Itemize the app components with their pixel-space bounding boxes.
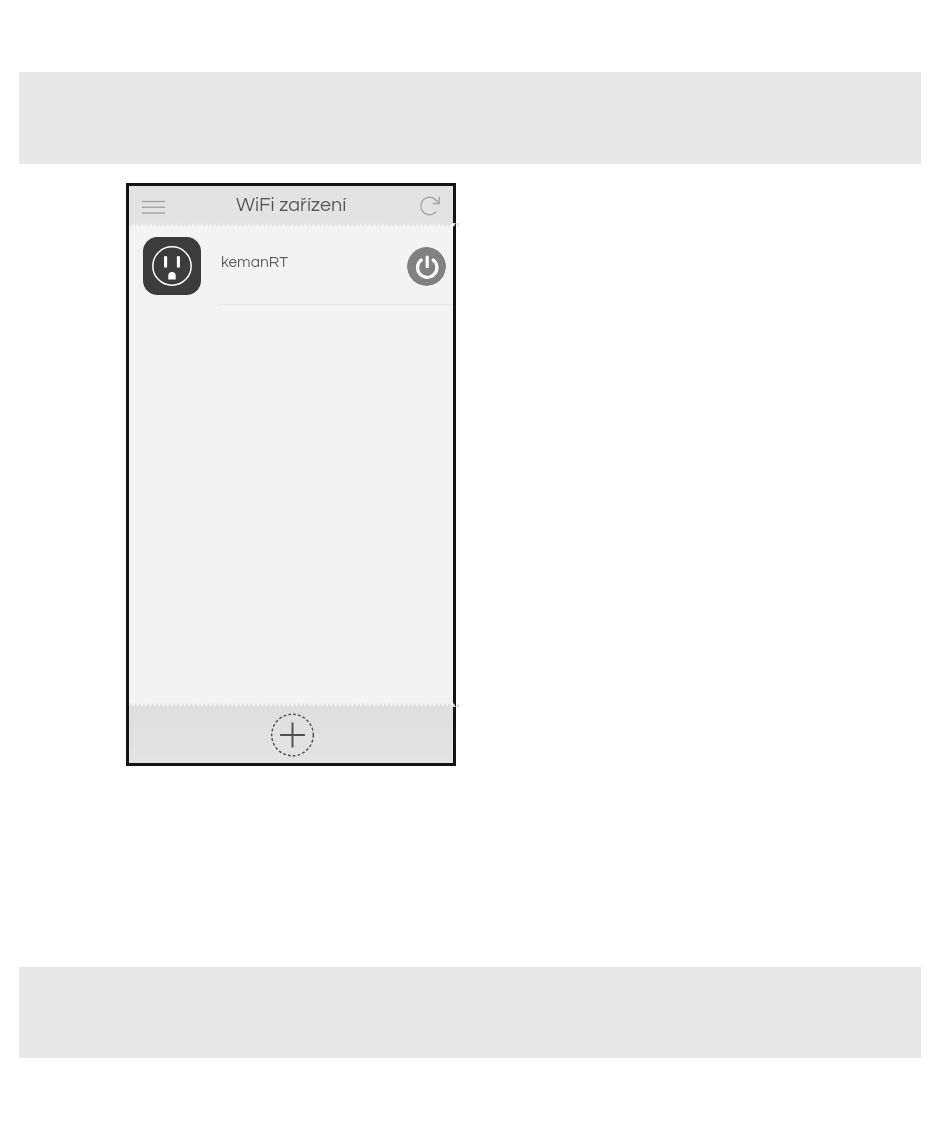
staticText: WiFi zařízení	[236, 195, 347, 215]
button[interactable]: Add device	[268, 711, 316, 759]
button[interactable]: Refresh device list	[414, 190, 446, 222]
button[interactable]: Power on/off	[407, 247, 446, 286]
button[interactable]: Open navigation menu	[134, 188, 172, 226]
button[interactable]: kemanRT	[129, 227, 453, 305]
staticText: kemanRT	[221, 254, 289, 270]
